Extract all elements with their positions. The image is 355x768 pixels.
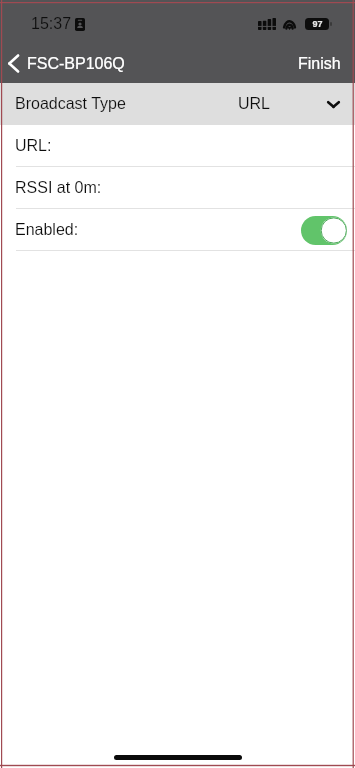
staticText: FSC-BP106Q	[27, 55, 125, 73]
staticText: URL:	[15, 137, 52, 155]
staticText: 15:37	[31, 15, 72, 33]
staticText: URL	[238, 95, 271, 113]
staticText: Finish	[298, 55, 341, 73]
staticText: RSSI at 0m:	[15, 179, 102, 197]
button[interactable]: URL:	[0, 125, 355, 167]
button[interactable]: RSSI at 0m:	[0, 167, 355, 209]
button[interactable]: Broadcast Type	[0, 83, 355, 125]
button[interactable]: Finish	[284, 49, 355, 79]
staticText: Enabled:	[15, 221, 79, 239]
button[interactable]: Enabled:	[0, 209, 355, 251]
staticText: Broadcast Type	[15, 95, 126, 113]
button[interactable]: Enabled	[301, 216, 347, 245]
staticText: 97	[312, 19, 323, 29]
button[interactable]: Back	[0, 50, 135, 77]
